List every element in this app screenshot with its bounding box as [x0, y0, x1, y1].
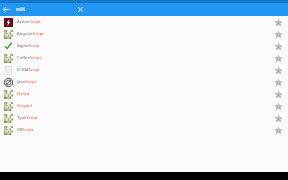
button[interactable]: JavaScript [0, 76, 288, 88]
button[interactable]: AngularScript [0, 28, 288, 40]
button[interactable]: Favorite [273, 53, 284, 64]
button[interactable]: Favorite [273, 41, 284, 52]
button[interactable]: Favorite [273, 65, 284, 76]
button[interactable]: JScript [0, 88, 288, 100]
button[interactable]: AppleScript [0, 40, 288, 52]
staticText: JavaScript [17, 79, 37, 85]
staticText: Scriptol [17, 103, 32, 109]
button[interactable]: Favorite [273, 17, 284, 28]
staticText: CoffeeScript [17, 55, 41, 61]
button[interactable]: Favorite [273, 125, 284, 136]
button[interactable]: ECMAScript [0, 64, 288, 76]
button[interactable]: Favorite [273, 101, 284, 112]
button[interactable]: VBScript [0, 124, 288, 136]
staticText: AppleScript [17, 43, 40, 49]
button[interactable]: Favorite [273, 113, 284, 124]
staticText: VBScript [17, 127, 34, 133]
staticText: TypeScript [17, 115, 38, 121]
button[interactable]: ActionScript [0, 16, 288, 28]
button[interactable]: Favorite [273, 89, 284, 100]
staticText: AngularScript [17, 31, 44, 37]
button[interactable]: TypeScript [0, 112, 288, 124]
button[interactable]: Back [0, 3, 13, 16]
button[interactable]: CoffeeScript [0, 52, 288, 64]
staticText: JScript [17, 91, 30, 97]
button[interactable]: Scriptol [0, 100, 288, 112]
staticText: ECMAScript [17, 67, 40, 73]
staticText: ActionScript [17, 19, 41, 25]
button[interactable]: Favorite [273, 29, 284, 40]
button[interactable]: Favorite [273, 77, 284, 88]
button[interactable]: Clear [74, 3, 87, 16]
button[interactable]: edit [16, 3, 26, 16]
staticText: edit [16, 6, 26, 13]
